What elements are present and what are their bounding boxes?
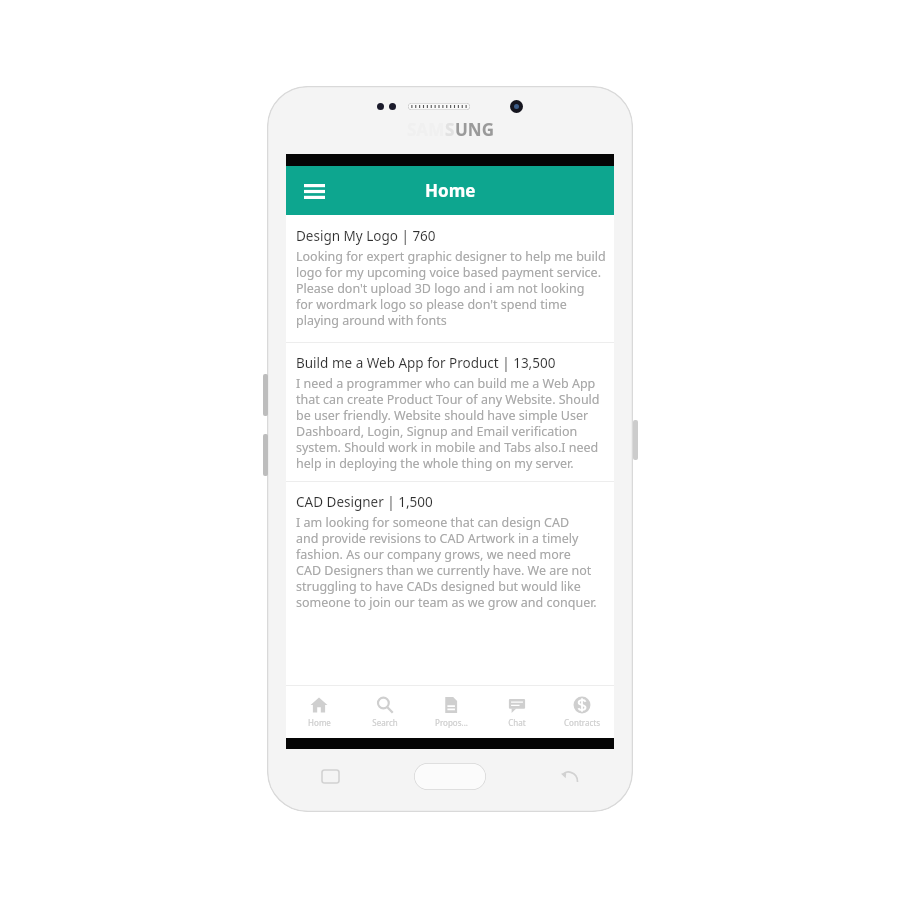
button[interactable]: Propos... xyxy=(418,686,484,738)
staticText: Dashboard, Login, Signup and Email verif… xyxy=(296,423,578,439)
staticText: fashion. As our company grows, we need m… xyxy=(296,546,571,562)
staticText: UNG xyxy=(455,118,494,141)
staticText: struggling to have CADs designed but wou… xyxy=(296,578,581,594)
staticText: playing around with fonts xyxy=(296,312,447,328)
staticText: Home xyxy=(308,717,331,728)
staticText: Please don't upload 3D logo and i am not… xyxy=(296,280,585,296)
staticText: help in deploying the whole thing on my … xyxy=(296,455,574,471)
staticText: Home xyxy=(425,179,476,202)
staticText: that can create Product Tour of any Webs… xyxy=(296,391,600,407)
button[interactable]: Open navigation menu xyxy=(294,171,334,211)
staticText: I am looking for someone that can design… xyxy=(296,514,570,530)
staticText: logo for my upcoming voice based payment… xyxy=(296,264,602,280)
staticText: Build me a Web App for Product | 13,500 xyxy=(296,354,556,372)
staticText: for wordmark logo so please don't spend … xyxy=(296,296,567,312)
button[interactable]: Design My Logo | 760 xyxy=(286,215,614,342)
button[interactable]: Home xyxy=(286,686,352,738)
button[interactable]: Home button xyxy=(414,763,486,790)
staticText: and provide revisions to CAD Artwork in … xyxy=(296,530,579,546)
button[interactable]: Chat xyxy=(484,686,550,738)
staticText: S xyxy=(445,118,455,141)
button[interactable]: Build me a Web App for Product | 13,500 xyxy=(286,343,614,481)
staticText: CAD Designer | 1,500 xyxy=(296,493,433,511)
staticText: Search xyxy=(372,717,398,728)
staticText: Chat xyxy=(508,717,526,728)
staticText: Propos... xyxy=(435,717,468,728)
staticText: I need a programmer who can build me a W… xyxy=(296,375,596,391)
staticText: Contracts xyxy=(564,717,600,728)
staticText: someone to join our team as we grow and … xyxy=(296,594,597,610)
staticText: Looking for expert graphic designer to h… xyxy=(296,248,606,264)
button[interactable]: Recent apps xyxy=(315,761,345,791)
button[interactable]: Search xyxy=(352,686,418,738)
button[interactable]: Contracts xyxy=(550,686,614,738)
staticText: system. Should work in mobile and Tabs a… xyxy=(296,439,599,455)
staticText: Design My Logo | 760 xyxy=(296,227,436,245)
staticText: be user friendly. Website should have si… xyxy=(296,407,589,423)
button[interactable]: CAD Designer | 1,500 xyxy=(286,482,614,620)
button[interactable]: Back xyxy=(555,761,585,791)
staticText: CAD Designers than we currently have. We… xyxy=(296,562,592,578)
